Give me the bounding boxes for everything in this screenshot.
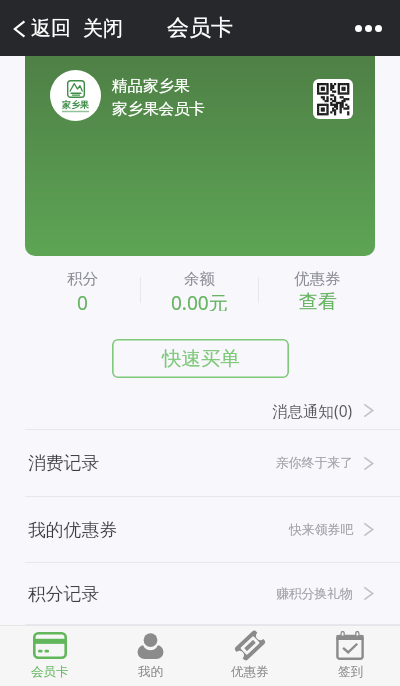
button[interactable]: 签到 <box>300 626 400 686</box>
button[interactable]: 关闭 <box>80 8 126 49</box>
button[interactable]: 我的 <box>100 626 200 686</box>
staticText: 消息通知(0) <box>272 400 353 421</box>
staticText: 0 <box>77 290 88 311</box>
staticText: 快速买单 <box>162 346 240 371</box>
button[interactable]: 消息通知(0) <box>0 392 400 430</box>
button[interactable]: 家乡果 <box>25 56 375 256</box>
staticText: 返回 <box>31 16 71 41</box>
button[interactable]: 我的优惠券 <box>0 497 400 563</box>
staticText: 会员卡 <box>167 14 233 42</box>
button[interactable]: 积分记录 <box>0 563 400 625</box>
button[interactable]: 快速买单 <box>112 339 289 378</box>
button[interactable]: 余额 <box>141 269 258 311</box>
button[interactable]: 会员卡 <box>0 626 100 686</box>
button[interactable]: QR code <box>313 79 353 119</box>
button[interactable]: 消费记录 <box>0 430 400 497</box>
button[interactable]: More options <box>337 9 400 48</box>
staticText: 消费记录 <box>28 452 100 474</box>
staticText: 优惠券 <box>294 269 341 289</box>
staticText: 快来领券吧 <box>289 522 353 538</box>
button[interactable]: 返回 <box>0 8 75 49</box>
staticText: 赚积分换礼物 <box>276 586 353 602</box>
staticText: 我的优惠券 <box>28 519 117 541</box>
button[interactable]: 优惠券 <box>200 626 300 686</box>
staticText: 亲你终于来了 <box>276 455 353 471</box>
staticText: 会员卡 <box>31 664 69 680</box>
button[interactable]: 优惠券 <box>259 269 376 311</box>
staticText: 余额 <box>184 269 215 289</box>
staticText: 我的 <box>138 664 163 680</box>
staticText: 查看 <box>299 290 337 311</box>
staticText: 签到 <box>338 664 363 680</box>
staticText: 精品家乡果 <box>112 76 190 96</box>
staticText: 积分 <box>67 269 98 289</box>
staticText: 0.00元 <box>171 290 228 311</box>
staticText: 优惠券 <box>231 664 269 680</box>
staticText: 家乡果 <box>62 99 89 110</box>
button[interactable]: 积分 <box>24 269 140 311</box>
staticText: 积分记录 <box>28 583 100 605</box>
staticText: 家乡果会员卡 <box>112 99 205 119</box>
